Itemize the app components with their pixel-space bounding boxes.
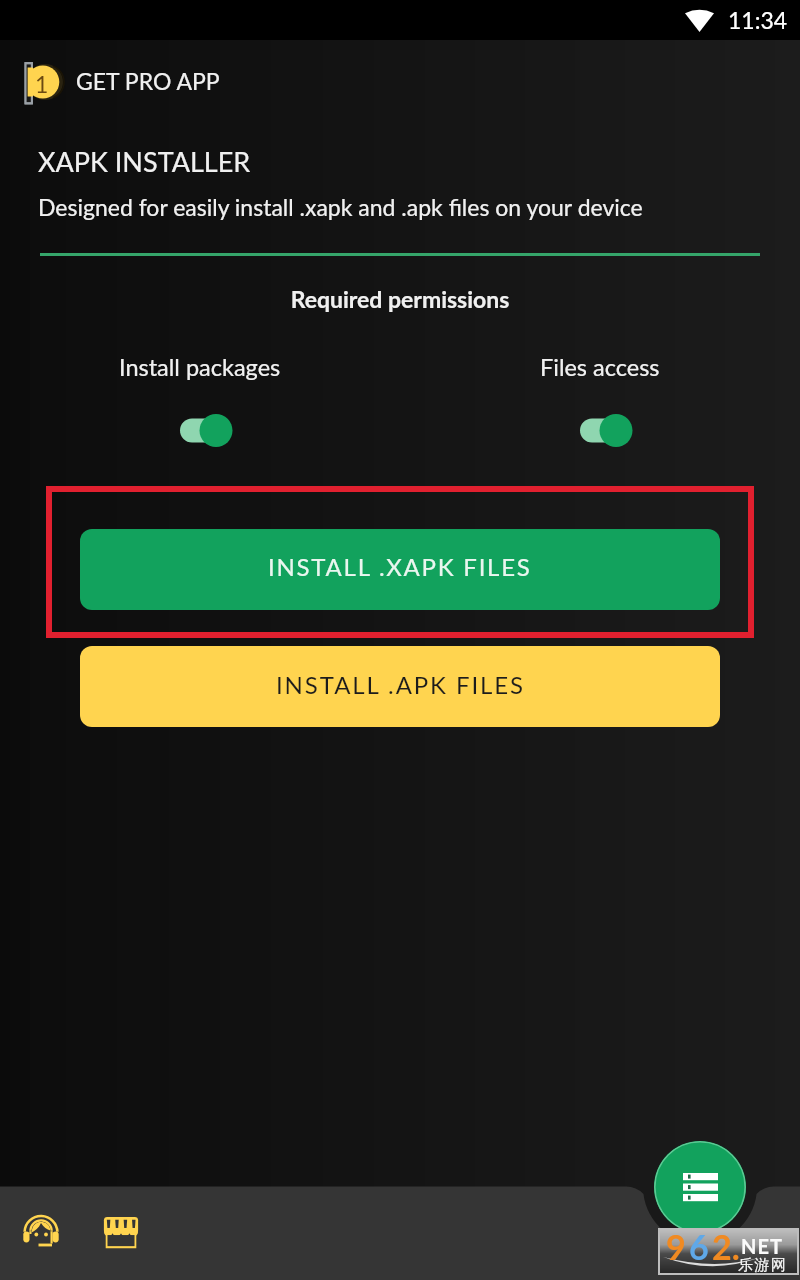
button[interactable]: Support — [16, 1208, 66, 1258]
button[interactable]: Install packages permission granted — [180, 413, 220, 448]
staticText: INSTALL .APK FILES — [276, 670, 525, 699]
staticText: Designed for easily install .xapk and .a… — [38, 193, 643, 221]
staticText: Install packages — [119, 353, 281, 381]
staticText: 11:34 — [728, 6, 788, 34]
staticText: 2. — [712, 1226, 740, 1267]
button[interactable]: Store — [96, 1208, 146, 1258]
staticText: 乐游网 — [738, 1256, 788, 1275]
staticText: 9 — [666, 1226, 686, 1267]
staticText: 1 — [35, 70, 49, 98]
staticText: GET PRO APP — [76, 67, 220, 95]
button[interactable]: Files access permission granted — [580, 413, 620, 448]
staticText: XAPK INSTALLER — [38, 145, 251, 177]
button[interactable]: 1 — [0, 48, 800, 116]
staticText: Files access — [540, 353, 660, 381]
staticText: INSTALL .XAPK FILES — [268, 552, 532, 581]
staticText: NET — [741, 1234, 783, 1258]
button[interactable]: INSTALL .APK FILES — [80, 646, 720, 727]
staticText: Required permissions — [0, 285, 800, 313]
staticText: 6 — [689, 1226, 709, 1267]
button[interactable]: Menu list — [654, 1141, 746, 1233]
button[interactable]: INSTALL .XAPK FILES — [80, 529, 720, 610]
